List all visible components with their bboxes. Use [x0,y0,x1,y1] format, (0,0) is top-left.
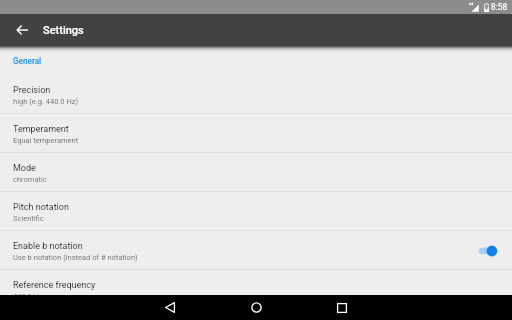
staticText: Settings [43,24,84,37]
button[interactable]: Reference frequency [0,270,512,309]
staticText: Temperament [13,124,69,135]
staticText: high (e.g. 440.0 Hz) [13,97,79,106]
button[interactable]: Recent apps [320,295,364,320]
staticText: Mode [13,163,36,174]
button[interactable]: Mode [0,153,512,192]
staticText: chromatic [13,175,47,184]
button[interactable]: Pitch notation [0,192,512,231]
staticText: 8:58 [491,2,508,12]
button[interactable]: Back [148,295,192,320]
staticText: Use b notation (instead of # notation) [13,253,138,262]
staticText: 440.0 Hz [13,292,43,301]
button[interactable]: Enable b notation [0,231,512,270]
staticText: Equal temperament [13,136,79,145]
staticText: General [13,56,42,66]
button[interactable]: Home [234,295,278,320]
staticText: Precision [13,85,51,96]
button[interactable]: Navigate up [0,14,38,46]
button[interactable]: Temperament [0,114,512,153]
staticText: Reference frequency [13,280,96,291]
staticText: Enable b notation [13,241,83,252]
button[interactable]: Precision [0,75,512,114]
staticText: Scientific [13,214,44,223]
staticText: Pitch notation [13,202,69,213]
